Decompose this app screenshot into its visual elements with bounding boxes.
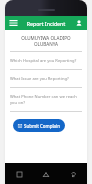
staticText: Report Incident xyxy=(18,20,74,27)
staticText: What Issue are you Reporting? xyxy=(10,76,69,82)
staticText: Submit Complain xyxy=(24,123,61,129)
button[interactable]: Recent apps xyxy=(12,167,26,181)
button[interactable]: Submit Complain xyxy=(13,119,65,132)
staticText: What Phone Number can we reach you on? xyxy=(10,94,82,106)
button[interactable]: What Issue are you Reporting? xyxy=(10,70,82,88)
button[interactable]: Open navigation menu xyxy=(8,18,18,28)
button[interactable]: Back xyxy=(66,167,80,181)
button[interactable]: Home xyxy=(39,167,53,181)
staticText: OLUMUYIWA OLADIPO OLUBANYA xyxy=(10,35,82,47)
button[interactable]: Which Hospital are you Reporting? xyxy=(10,52,82,70)
button[interactable]: Account xyxy=(74,18,84,28)
staticText: Which Hospital are you Reporting? xyxy=(10,58,77,64)
button[interactable]: What Phone Number can we reach you on? xyxy=(10,88,82,112)
